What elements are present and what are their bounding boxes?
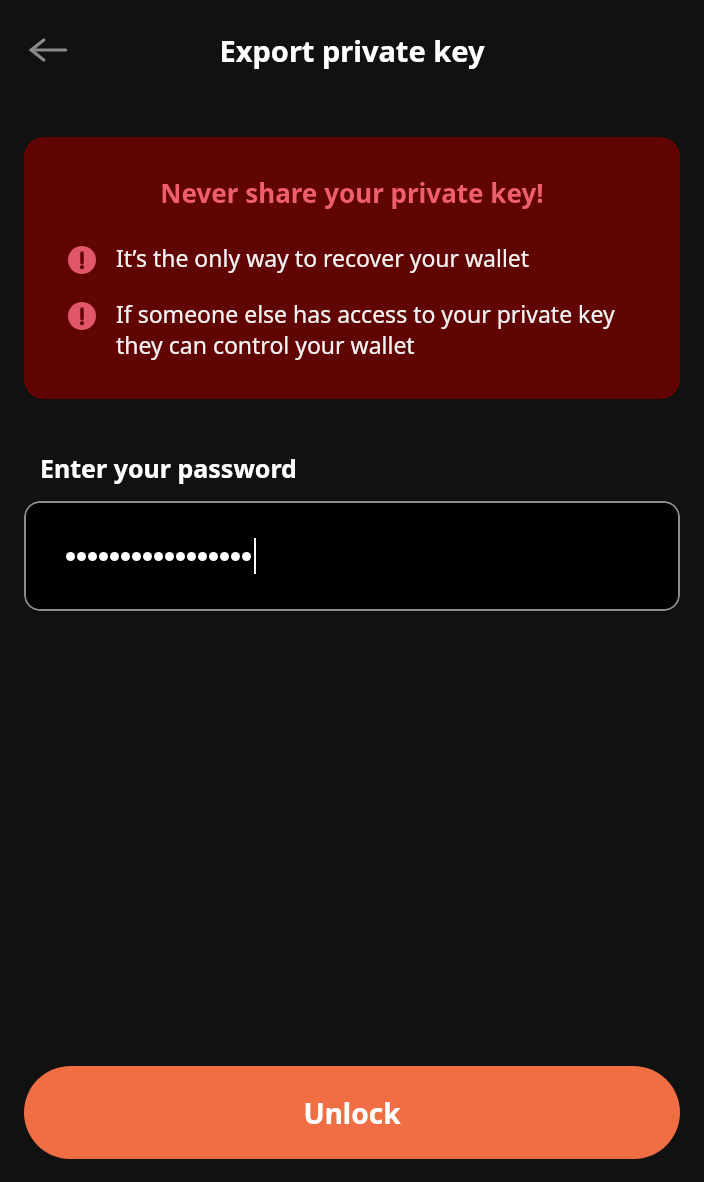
button[interactable]: Unlock	[24, 1066, 680, 1159]
button[interactable]: Back	[12, 14, 84, 86]
staticText: Enter your password	[40, 451, 297, 485]
staticText: It’s the only way to recover your wallet	[116, 242, 530, 273]
staticText: Export private key	[219, 31, 485, 70]
staticText: Unlock	[303, 1094, 401, 1132]
staticText: If someone else has access to your priva…	[116, 298, 654, 361]
button[interactable]	[24, 501, 680, 611]
staticText: Never share your private key!	[24, 175, 680, 210]
